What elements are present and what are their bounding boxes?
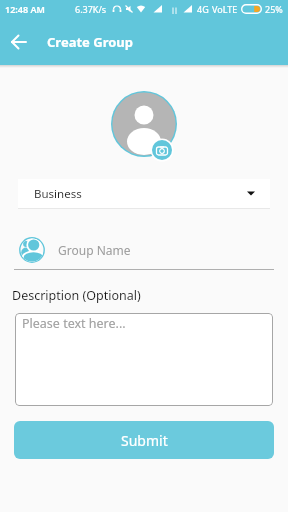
button[interactable]: Business	[18, 179, 270, 208]
staticText: Group Name	[58, 242, 131, 258]
staticText: Business	[34, 186, 82, 202]
staticText: VoLTE	[212, 3, 238, 15]
staticText: 4G	[197, 3, 209, 15]
staticText: 25%	[265, 3, 283, 15]
button[interactable]: Please text here...	[15, 313, 273, 406]
staticText: Please text here...	[22, 315, 126, 332]
staticText: Description (Optional)	[12, 287, 141, 304]
button[interactable]	[0, 18, 38, 65]
staticText: Submit	[121, 431, 168, 450]
staticText: 12:48 AM	[5, 3, 45, 15]
staticText: 6.37K/s	[75, 3, 107, 15]
button[interactable]: Group Name	[19, 237, 269, 263]
button[interactable]: Submit	[14, 421, 274, 459]
staticText: Create Group	[47, 33, 133, 51]
